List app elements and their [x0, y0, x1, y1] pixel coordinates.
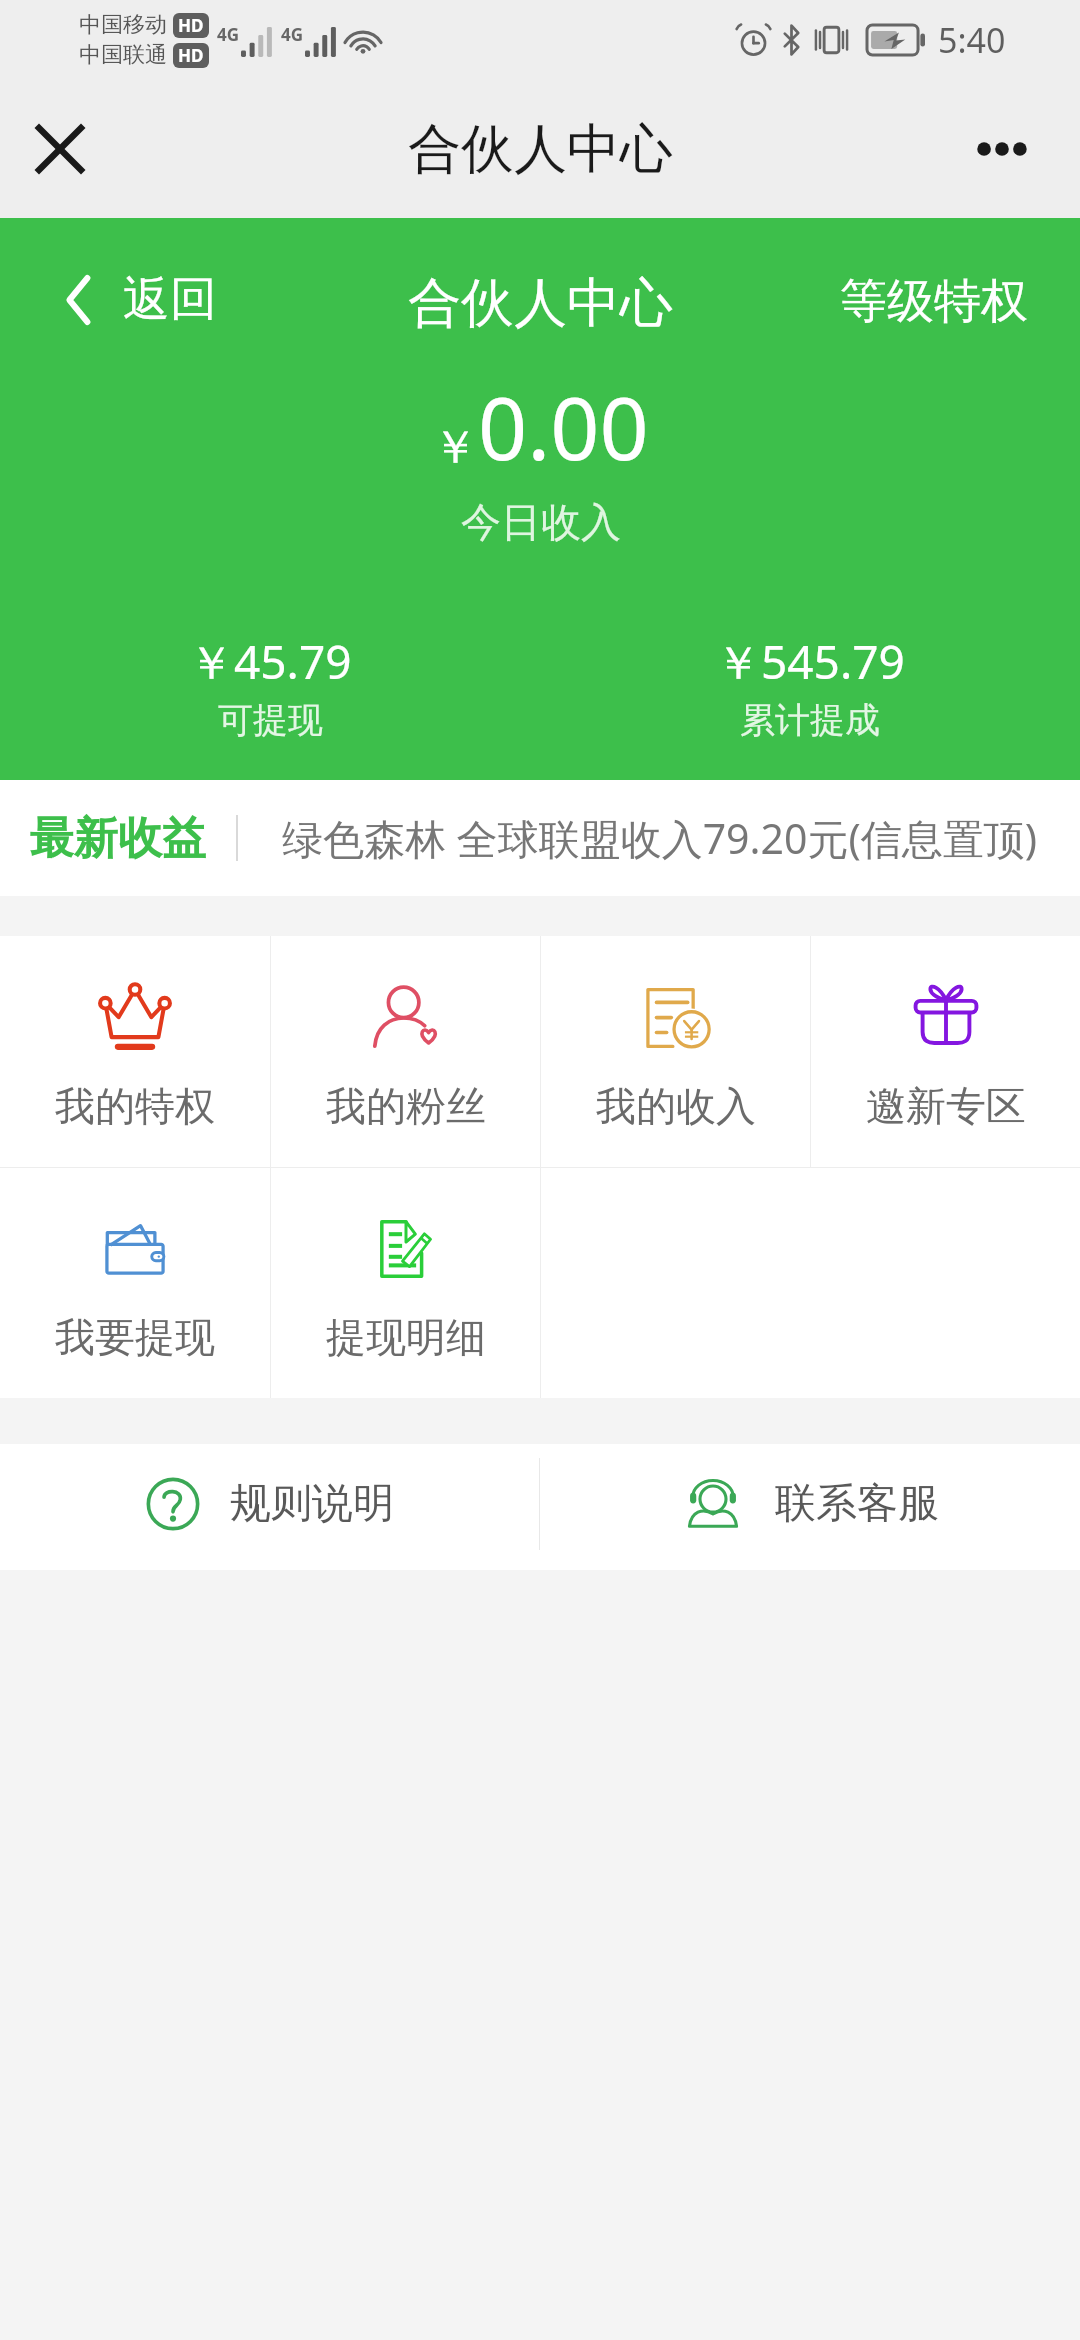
- staticText: 中国移动: [79, 11, 167, 39]
- staticText: 最新收益: [30, 811, 206, 866]
- staticText: 合伙人中心: [408, 270, 673, 337]
- button[interactable]: 返回: [67, 270, 217, 329]
- button[interactable]: 我的特权: [0, 936, 270, 1167]
- staticText: 联系客服: [775, 1478, 939, 1530]
- staticText: ￥: [432, 419, 478, 477]
- staticText: 返回: [123, 270, 217, 329]
- button[interactable]: Close: [21, 110, 99, 188]
- button[interactable]: 我的粉丝: [271, 936, 540, 1167]
- button[interactable]: 最新收益: [0, 780, 1080, 896]
- button[interactable]: 等级特权: [840, 272, 1028, 331]
- button[interactable]: ￥545.79: [540, 630, 1080, 742]
- staticText: 可提现: [218, 698, 323, 742]
- button[interactable]: More options: [963, 110, 1041, 188]
- staticText: 邀新专区: [866, 1081, 1026, 1131]
- staticText: 中国联通: [79, 41, 167, 69]
- staticText: 今日收入: [461, 497, 621, 547]
- staticText: HD: [178, 14, 204, 37]
- staticText: HD: [178, 44, 204, 67]
- staticText: 4G: [281, 23, 304, 46]
- button[interactable]: 规则说明: [0, 1444, 539, 1564]
- staticText: 我的粉丝: [326, 1081, 486, 1131]
- staticText: 绿色森林 全球联盟收入79.20元(信息置顶): [282, 810, 1038, 866]
- staticText: 规则说明: [230, 1478, 394, 1530]
- button[interactable]: ￥45.79: [0, 630, 540, 742]
- button[interactable]: 邀新专区: [811, 936, 1080, 1167]
- staticText: 等级特权: [840, 272, 1028, 331]
- staticText: 我要提现: [55, 1312, 215, 1362]
- button[interactable]: 我的收入: [541, 936, 810, 1167]
- staticText: 我的收入: [596, 1081, 756, 1131]
- staticText: 提现明细: [326, 1312, 486, 1362]
- staticText: 0.00: [478, 368, 649, 485]
- staticText: 合伙人中心: [408, 116, 673, 183]
- staticText: ￥45.79: [188, 630, 352, 693]
- button[interactable]: 我要提现: [0, 1168, 270, 1398]
- button[interactable]: 联系客服: [540, 1444, 1080, 1564]
- staticText: 我的特权: [55, 1081, 215, 1131]
- staticText: 5:40: [938, 17, 1006, 63]
- staticText: 累计提成: [740, 698, 880, 742]
- button[interactable]: 提现明细: [271, 1168, 540, 1398]
- staticText: 4G: [217, 23, 240, 46]
- staticText: ￥545.79: [715, 630, 905, 693]
